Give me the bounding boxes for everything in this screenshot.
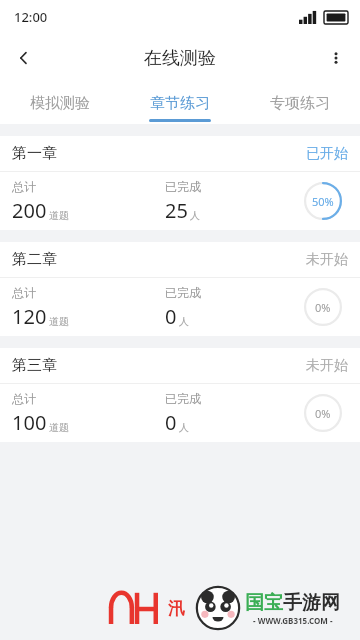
staticText: 已完成 [165, 391, 201, 406]
button[interactable]: 章节练习 [120, 82, 240, 124]
staticText: 120 [12, 303, 47, 330]
staticText: 25 [165, 197, 188, 224]
staticText: 专项练习 [270, 94, 330, 113]
button[interactable]: Back [0, 34, 48, 82]
staticText: 0% [315, 300, 331, 315]
staticText: 道题 [49, 421, 69, 434]
staticText: 第一章 [12, 144, 57, 163]
button[interactable]: 第二章 [0, 242, 360, 336]
staticText: 道题 [49, 315, 69, 328]
staticText: 汛 [168, 598, 185, 619]
staticText: 第三章 [12, 356, 57, 375]
button[interactable]: 第一章 [0, 136, 360, 230]
staticText: 第二章 [12, 250, 57, 269]
staticText: 章节练习 [150, 94, 210, 113]
button[interactable]: 专项练习 [240, 82, 360, 124]
staticText: 已完成 [165, 285, 201, 300]
button[interactable]: 第三章 [0, 348, 360, 442]
staticText: 国宝 [245, 591, 283, 615]
button[interactable]: More options [312, 34, 360, 82]
staticText: 未开始 [306, 357, 348, 375]
staticText: 总计 [12, 285, 36, 300]
staticText: 总计 [12, 391, 36, 406]
staticText: 未开始 [306, 251, 348, 269]
staticText: 模拟测验 [30, 94, 90, 113]
button[interactable]: 模拟测验 [0, 82, 120, 124]
staticText: 人 [179, 421, 189, 434]
staticText: 总计 [12, 179, 36, 194]
staticText: 在线测验 [144, 47, 216, 70]
staticText: 0% [315, 406, 331, 421]
staticText: 0 [165, 303, 177, 330]
staticText: 12:00 [14, 8, 48, 26]
staticText: 已完成 [165, 179, 201, 194]
staticText: 200 [12, 197, 47, 224]
staticText: 手游网 [283, 591, 340, 615]
staticText: 0 [165, 409, 177, 436]
staticText: 人 [190, 209, 200, 222]
staticText: 100 [12, 409, 47, 436]
staticText: - WWW.GB315.COM - [253, 615, 333, 626]
staticText: 已开始 [306, 145, 348, 163]
staticText: 50% [312, 194, 334, 209]
staticText: 道题 [49, 209, 69, 222]
staticText: 人 [179, 315, 189, 328]
